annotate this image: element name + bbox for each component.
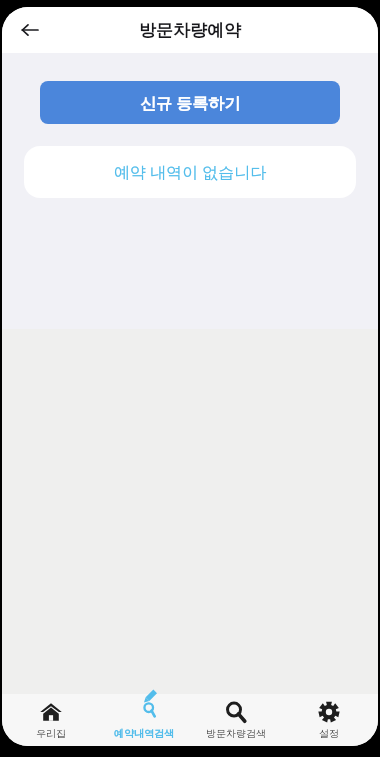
staticText: 우리집 (36, 727, 66, 740)
button[interactable]: 예약 내역이 없습니다 (24, 146, 356, 198)
staticText: 방문차량검색 (206, 727, 266, 740)
staticText: 방문차량예약 (139, 20, 241, 41)
button[interactable]: Back (8, 8, 52, 52)
staticText: 설정 (319, 727, 339, 740)
staticText: 예약 내역이 없습니다 (114, 161, 267, 183)
staticText: 예약내역검색 (114, 727, 174, 740)
button[interactable]: 방문차량검색 (193, 694, 279, 746)
button[interactable]: 신규 등록하기 (40, 81, 340, 124)
staticText: 신규 등록하기 (140, 92, 241, 114)
button[interactable]: 설정 (286, 694, 372, 746)
button[interactable]: 우리집 (8, 694, 94, 746)
button[interactable]: 예약내역검색 (101, 694, 187, 746)
